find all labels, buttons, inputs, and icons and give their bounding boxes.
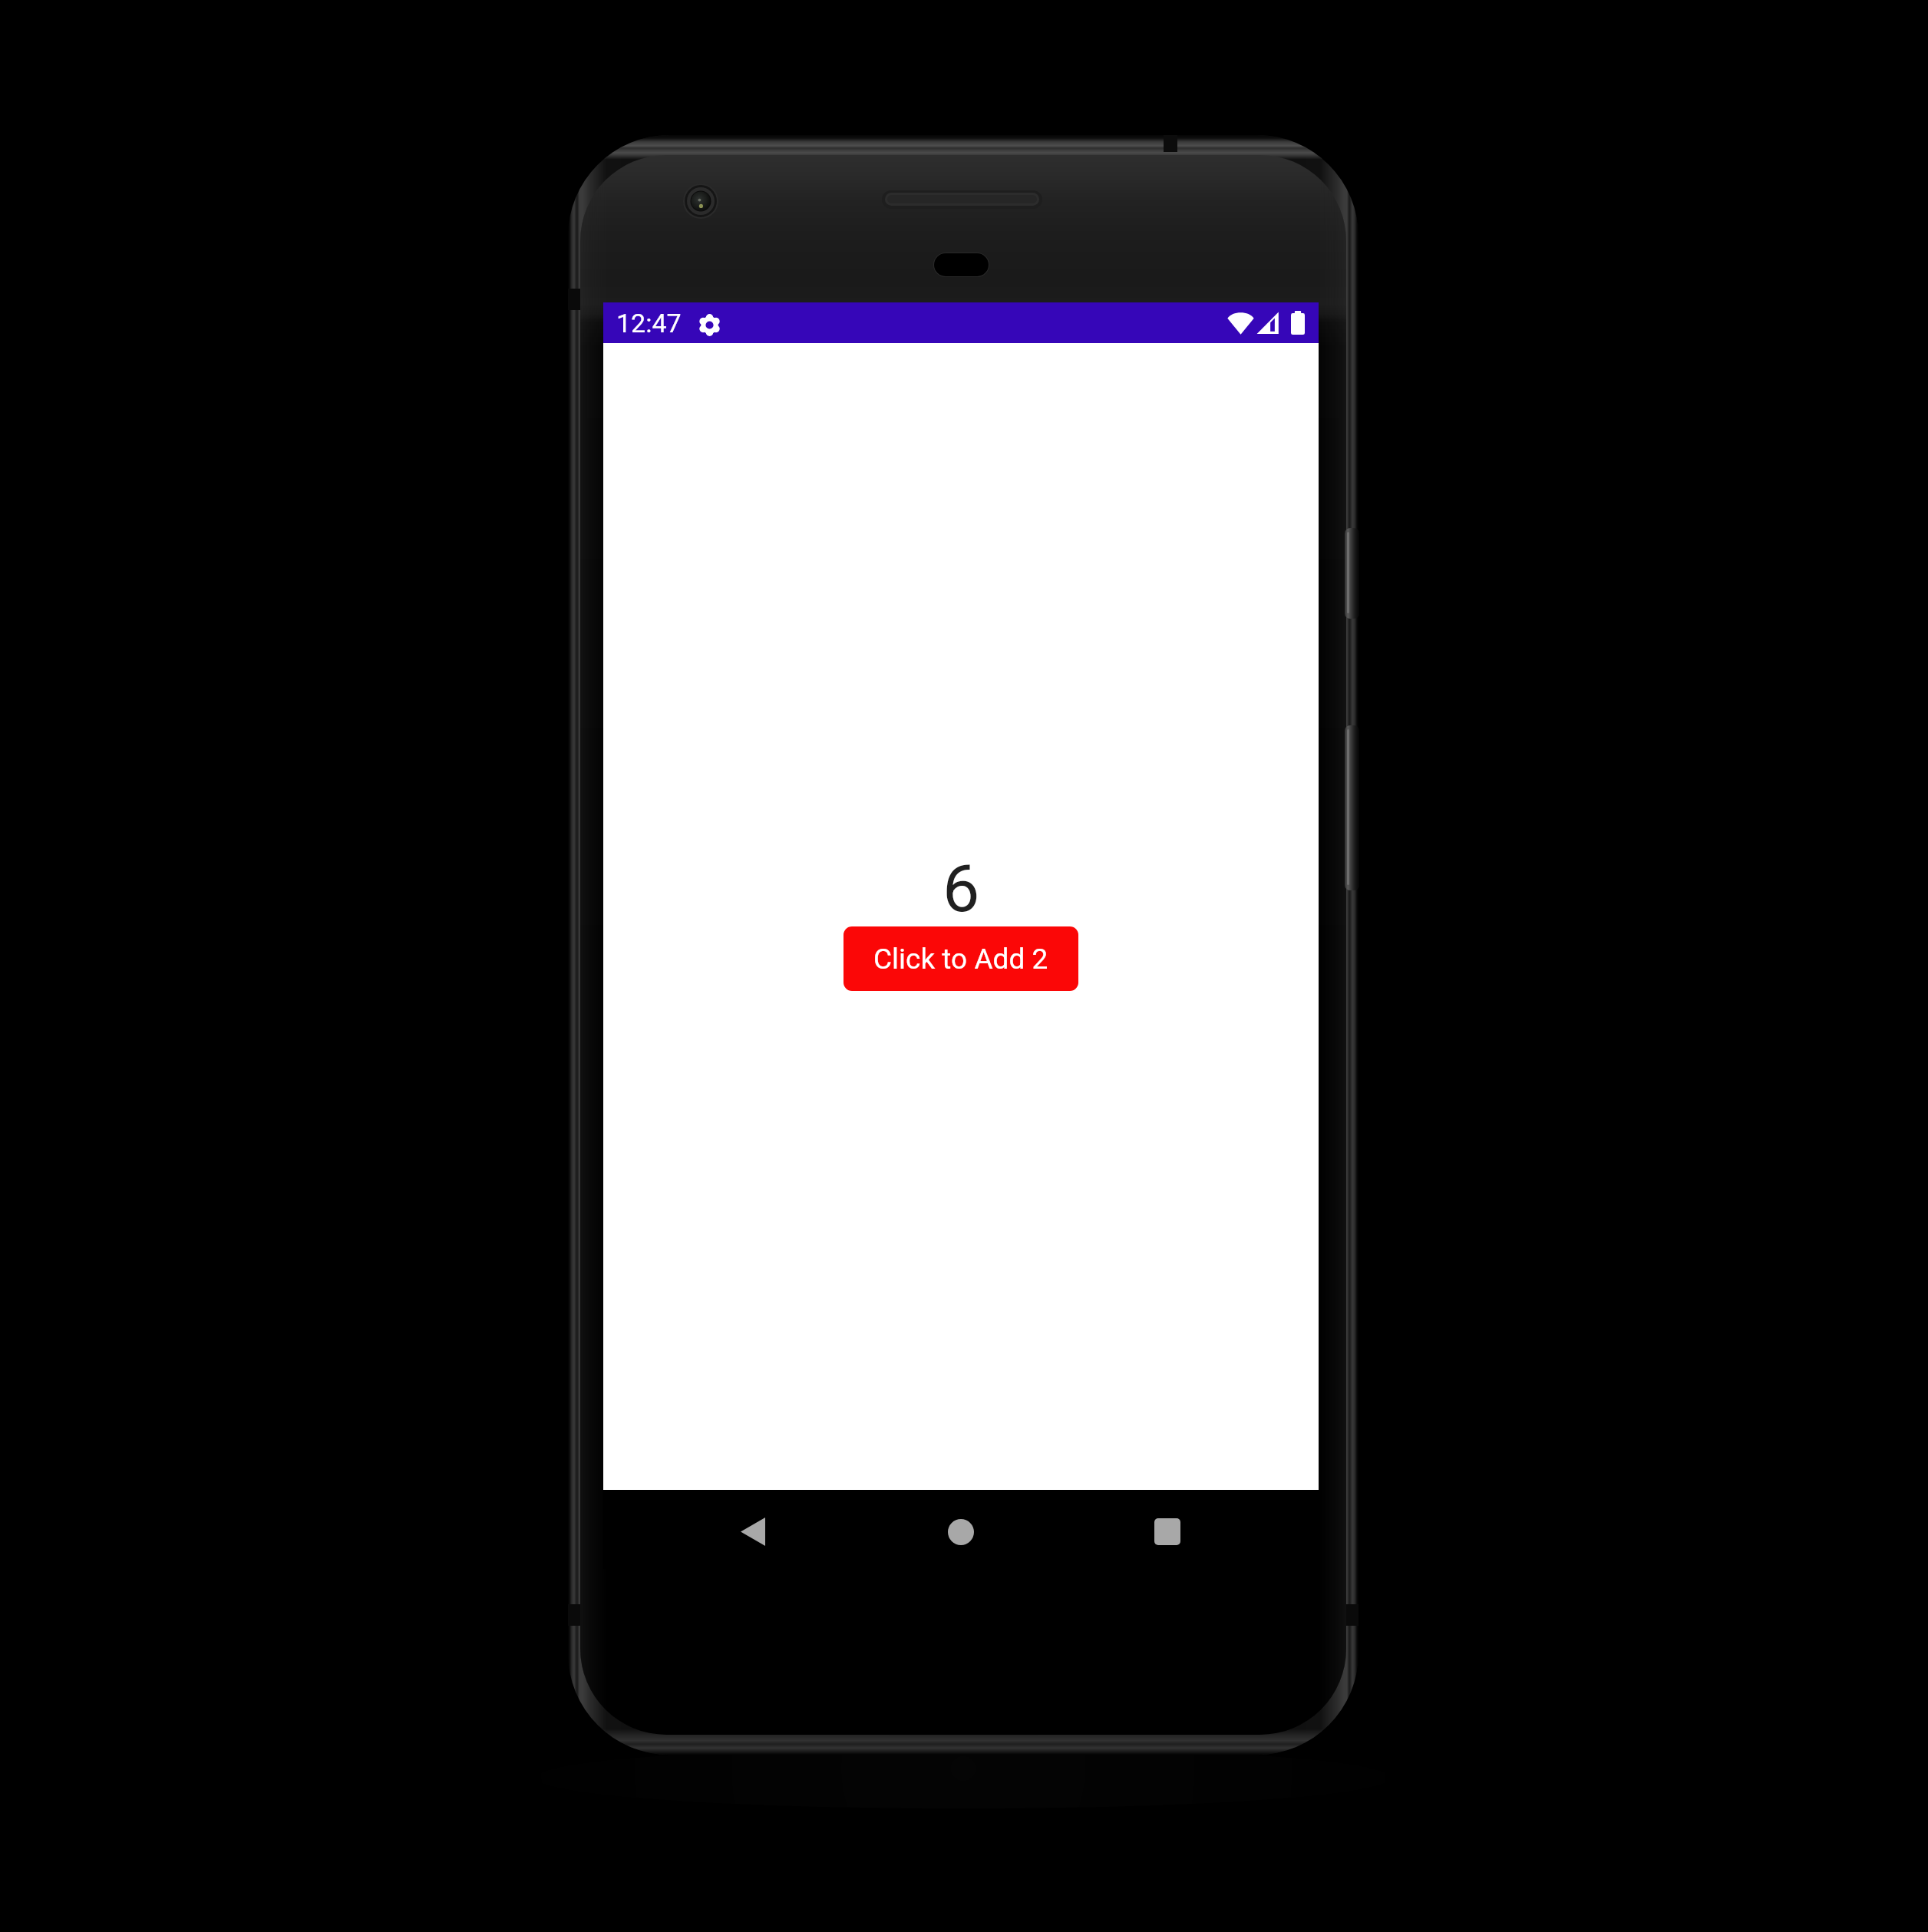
staticText: 6 <box>943 850 980 927</box>
button[interactable]: Home <box>903 1490 1018 1569</box>
staticText: 12:47 <box>616 308 682 339</box>
button[interactable]: Recent apps <box>1110 1490 1225 1569</box>
button[interactable]: Settings <box>692 302 727 343</box>
button[interactable]: Back <box>695 1490 810 1569</box>
staticText: Click to Add 2 <box>873 943 1048 976</box>
button[interactable]: Click to Add 2 <box>843 926 1078 991</box>
